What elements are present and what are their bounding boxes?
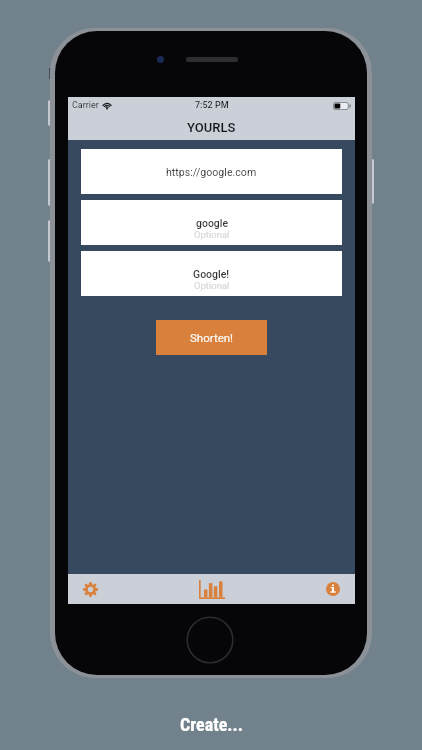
- button[interactable]: Info: [316, 574, 350, 604]
- staticText: Shorten!: [190, 331, 234, 344]
- staticText: 7:52 PM: [195, 100, 229, 111]
- button[interactable]: Settings: [73, 574, 107, 604]
- button[interactable]: Google!: [81, 251, 342, 296]
- staticText: Google!: [193, 268, 230, 280]
- staticText: google: [196, 217, 229, 229]
- button[interactable]: Shorten!: [156, 320, 267, 355]
- staticText: https://google.com: [166, 166, 257, 178]
- staticText: YOURLS: [187, 120, 236, 135]
- staticText: Optional: [194, 229, 230, 240]
- staticText: Optional: [194, 280, 230, 291]
- button[interactable]: https://google.com: [81, 149, 342, 194]
- button[interactable]: google: [81, 200, 342, 245]
- staticText: Create...: [180, 714, 243, 735]
- staticText: Carrier: [72, 100, 99, 111]
- button[interactable]: Statistics: [193, 574, 231, 604]
